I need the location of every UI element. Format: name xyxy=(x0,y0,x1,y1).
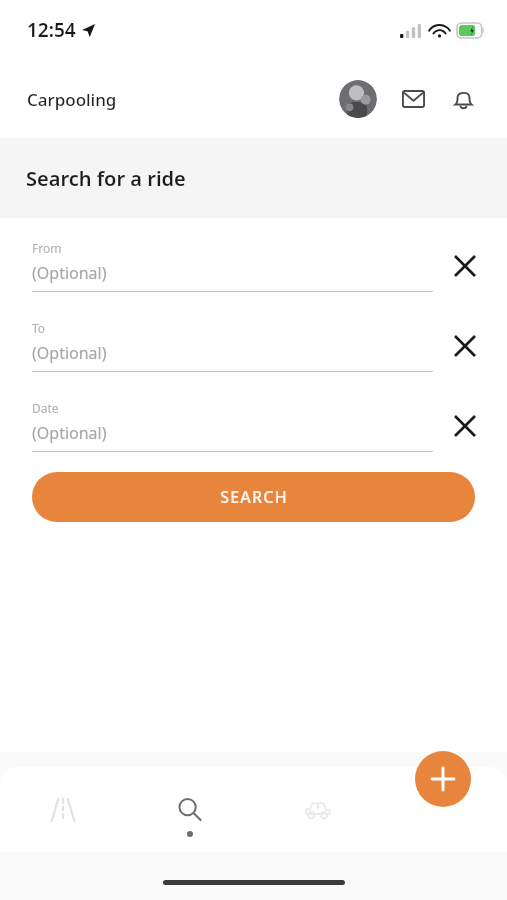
button[interactable]: Rides xyxy=(0,767,126,852)
staticText: SEARCH xyxy=(220,486,288,508)
staticText: (Optional) xyxy=(32,342,107,364)
button[interactable]: From xyxy=(32,240,483,292)
staticText: Carpooling xyxy=(27,88,117,111)
button[interactable]: Messages xyxy=(393,79,433,119)
staticText: From xyxy=(32,240,62,256)
button[interactable]: SEARCH xyxy=(32,472,475,522)
staticText: (Optional) xyxy=(32,422,107,444)
staticText: Date xyxy=(32,400,59,416)
button[interactable]: Add ride xyxy=(415,751,471,807)
button[interactable]: Clear To xyxy=(447,328,483,364)
button[interactable]: Profile xyxy=(339,80,377,118)
button[interactable]: Clear From xyxy=(447,248,483,284)
button[interactable]: To xyxy=(32,320,483,372)
button[interactable]: Date xyxy=(32,400,483,452)
staticText: (Optional) xyxy=(32,262,107,284)
staticText: 12:54 xyxy=(27,17,76,43)
staticText: To xyxy=(32,320,46,336)
button[interactable]: Notifications xyxy=(443,79,483,119)
button[interactable]: Search xyxy=(126,767,253,852)
staticText: Search for a ride xyxy=(26,165,186,192)
button[interactable]: Clear Date xyxy=(447,408,483,444)
